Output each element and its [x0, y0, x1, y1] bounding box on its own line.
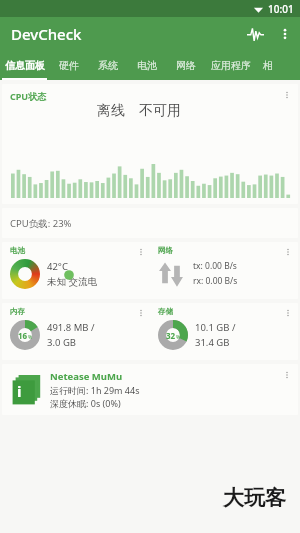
staticText: 电池 — [137, 59, 157, 72]
button[interactable]: CPU options — [280, 88, 294, 102]
button[interactable]: 系统 — [88, 51, 127, 80]
staticText: 491.8 MB / — [47, 321, 95, 334]
staticText: DevCheck — [11, 24, 82, 44]
staticText: % — [28, 334, 33, 341]
button[interactable]: 内存 — [2, 303, 298, 360]
staticText: 硬件 — [59, 59, 79, 72]
staticText: rx: 0.00 B/s — [193, 275, 238, 287]
button[interactable]: 应用程序 — [205, 51, 257, 80]
staticText: 10.1 GB / — [195, 321, 236, 334]
staticText: 系统 — [98, 59, 118, 72]
staticText: 10:01 — [268, 2, 294, 16]
staticText: 内存 — [10, 307, 25, 316]
staticText: i — [17, 381, 22, 401]
staticText: 信息面板 — [5, 59, 45, 72]
staticText: 32 — [166, 330, 176, 341]
button[interactable]: Battery options — [134, 245, 148, 259]
button[interactable]: App options — [280, 368, 294, 382]
staticText: 未知 交流电 — [47, 275, 97, 288]
staticText: tx: 0.00 B/s — [193, 260, 237, 272]
button[interactable]: App options — [2, 364, 298, 415]
button[interactable]: 内存 options — [134, 306, 148, 320]
button[interactable]: 相 — [257, 51, 279, 80]
staticText: 42°C — [47, 260, 68, 273]
staticText: CPU状态 — [10, 90, 47, 102]
staticText: 3.0 GB — [47, 336, 76, 349]
button[interactable]: CPU状态 — [2, 84, 298, 204]
button[interactable]: 信息面板 — [0, 51, 49, 80]
button[interactable]: CPU负载: 23% — [2, 208, 298, 238]
staticText: 电池 — [10, 246, 25, 255]
staticText: 深度休眠: 0s (0%) — [50, 397, 121, 409]
staticText: 大玩客 — [223, 485, 286, 511]
staticText: 离线 — [97, 102, 125, 120]
staticText: 不可用 — [139, 102, 181, 120]
staticText: 相 — [263, 59, 273, 72]
button[interactable]: 电池 — [127, 51, 166, 80]
staticText: 存储 — [158, 307, 173, 316]
button[interactable]: Monitor — [240, 19, 270, 49]
button[interactable]: Network options — [281, 245, 295, 259]
button[interactable]: 网络 — [166, 51, 205, 80]
button[interactable]: 电池 — [2, 242, 298, 299]
staticText: 网络 — [158, 246, 173, 255]
staticText: 16 — [18, 330, 28, 341]
button[interactable]: 存储 options — [281, 306, 295, 320]
staticText: % — [176, 334, 181, 341]
button[interactable]: More options — [270, 19, 300, 49]
staticText: 运行时间: 1h 29m 44s — [50, 384, 140, 396]
staticText: 31.4 GB — [195, 336, 230, 349]
staticText: CPU负载: 23% — [10, 217, 72, 230]
staticText: 网络 — [176, 59, 196, 72]
staticText: Netease MuMu — [50, 370, 123, 383]
staticText: 应用程序 — [211, 59, 251, 72]
button[interactable]: 硬件 — [49, 51, 88, 80]
